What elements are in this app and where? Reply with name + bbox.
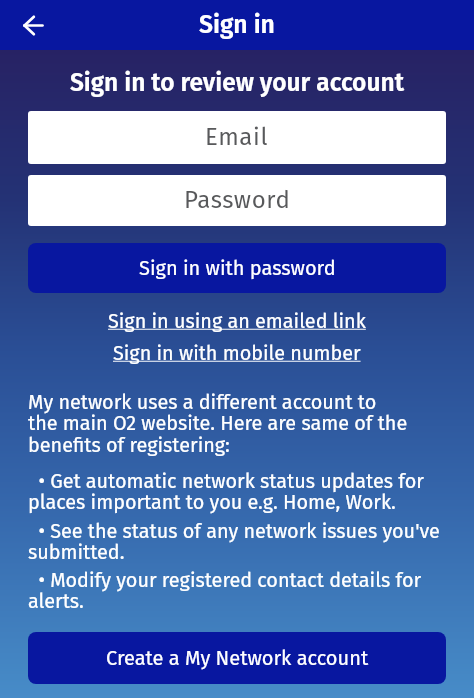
staticText: My network uses a different account to t… — [28, 390, 408, 458]
staticText: Email — [205, 123, 269, 152]
staticText: Password — [184, 186, 291, 215]
staticText: Sign in with password — [139, 256, 336, 280]
staticText: Sign in to review your account — [0, 68, 474, 97]
button[interactable]: Create a My Network account — [28, 632, 446, 684]
button[interactable]: Sign in using an emailed link — [108, 309, 366, 333]
staticText: • Get automatic network status updates f… — [28, 469, 424, 515]
staticText: • Modify your registered contact details… — [28, 568, 422, 614]
staticText: Sign in — [199, 10, 275, 40]
button[interactable]: Password — [28, 175, 446, 226]
button[interactable]: Sign in with password — [28, 243, 446, 293]
button[interactable]: Sign in with mobile number — [113, 341, 361, 365]
staticText: Create a My Network account — [106, 646, 369, 670]
staticText: • See the status of any network issues y… — [28, 519, 440, 565]
button[interactable]: Email — [28, 111, 446, 164]
button[interactable] — [15, 7, 51, 43]
